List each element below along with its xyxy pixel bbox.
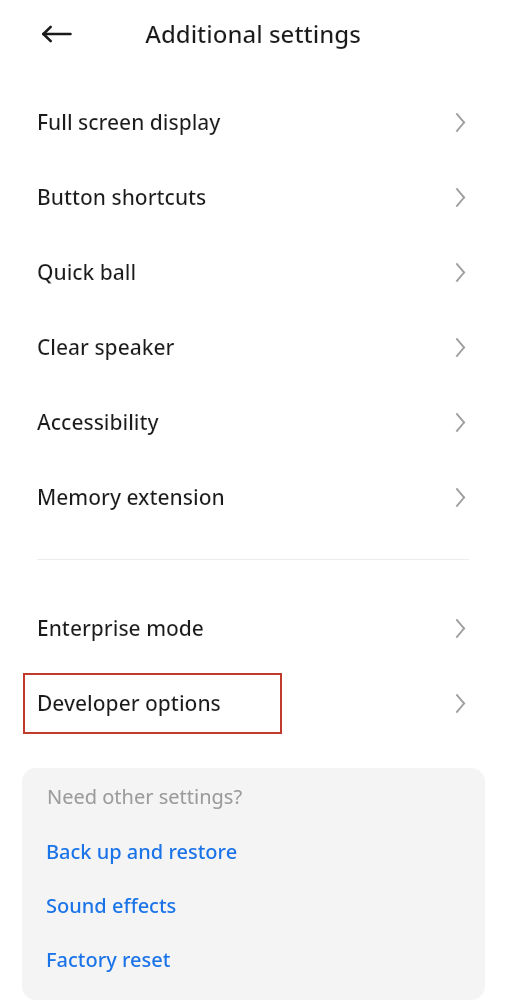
button[interactable]: Factory reset	[22, 932, 485, 986]
button[interactable]: Button shortcuts	[0, 160, 506, 235]
staticText: Additional settings	[0, 17, 506, 50]
button[interactable]: Back up and restore	[22, 824, 485, 878]
button[interactable]: Quick ball	[0, 235, 506, 310]
staticText: Clear speaker	[37, 333, 175, 362]
button[interactable]: Clear speaker	[0, 310, 506, 385]
button[interactable]: Sound effects	[22, 878, 485, 932]
staticText: Full screen display	[37, 108, 221, 137]
button[interactable]: Back	[33, 11, 79, 57]
staticText: Enterprise mode	[37, 614, 204, 643]
staticText: Accessibility	[37, 408, 159, 437]
staticText: Button shortcuts	[37, 183, 207, 212]
button[interactable]: Developer options	[0, 666, 506, 741]
button[interactable]: Enterprise mode	[0, 591, 506, 666]
staticText: Sound effects	[46, 892, 177, 919]
staticText: Quick ball	[37, 258, 137, 287]
staticText: Developer options	[37, 689, 221, 718]
button[interactable]: Memory extension	[0, 460, 506, 535]
staticText: Memory extension	[37, 483, 225, 512]
button[interactable]: Full screen display	[0, 85, 506, 160]
button[interactable]: Accessibility	[0, 385, 506, 460]
staticText: Factory reset	[46, 946, 171, 973]
staticText: Need other settings?	[47, 783, 243, 810]
staticText: Back up and restore	[46, 838, 238, 865]
